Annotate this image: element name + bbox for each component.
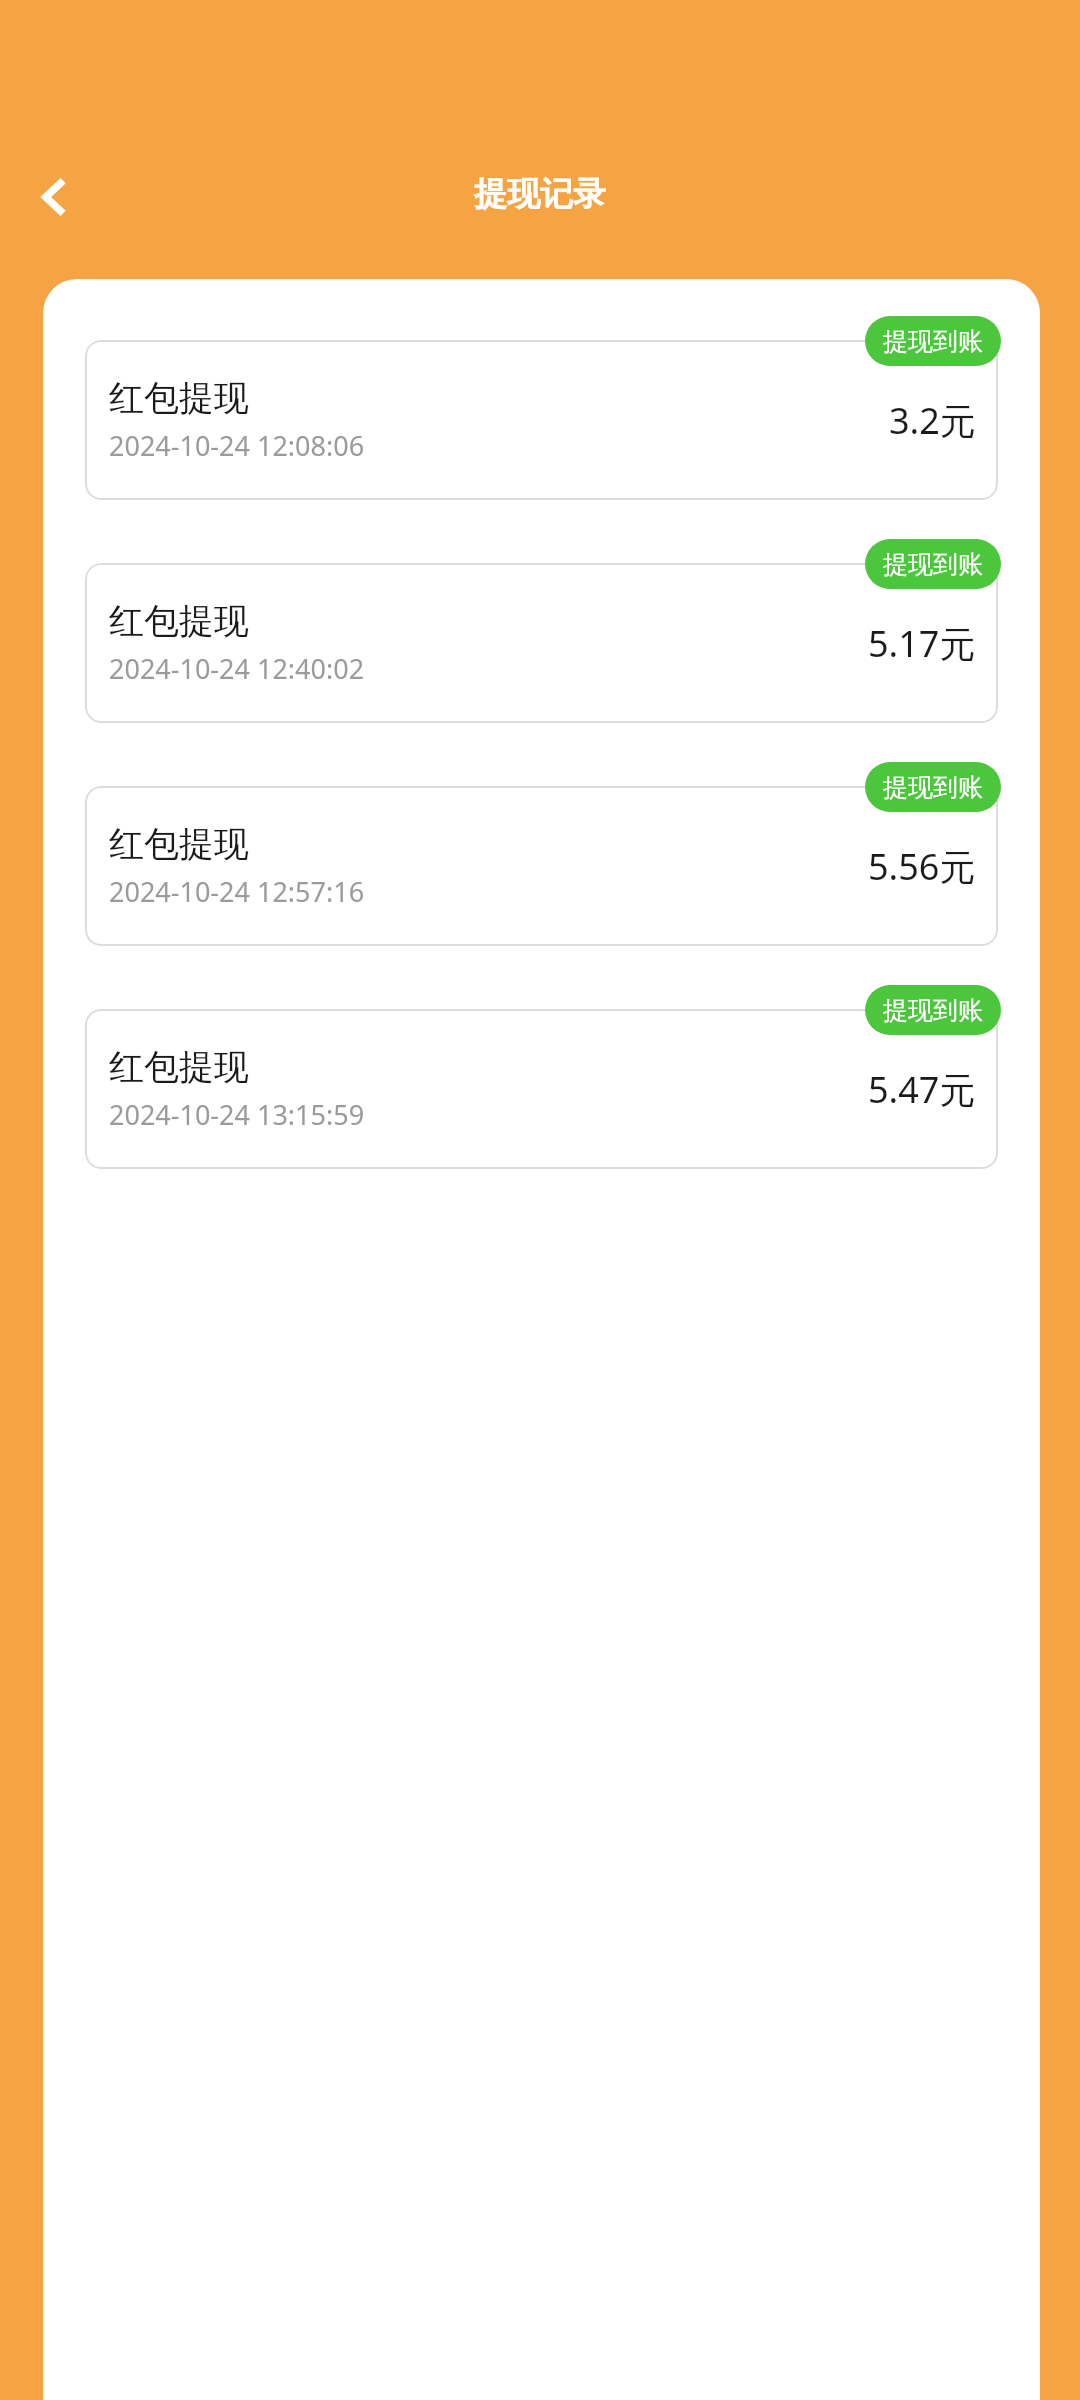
button[interactable]: Back [17, 161, 89, 233]
staticText: 提现到账 [883, 326, 983, 357]
staticText: 提现记录 [474, 173, 606, 215]
staticText: 3.2元 [889, 396, 976, 445]
staticText: 提现到账 [883, 549, 983, 580]
staticText: 提现到账 [883, 995, 983, 1026]
button[interactable]: 红包提现 [43, 786, 1040, 946]
staticText: 红包提现 [109, 376, 249, 420]
staticText: 提现到账 [883, 772, 983, 803]
staticText: 5.47元 [868, 1065, 976, 1114]
staticText: 红包提现 [109, 822, 249, 866]
staticText: 2024-10-24 12:40:02 [109, 650, 365, 687]
staticText: 2024-10-24 12:08:06 [109, 427, 365, 464]
button[interactable]: 红包提现 [43, 340, 1040, 500]
staticText: 5.17元 [868, 619, 976, 668]
staticText: 红包提现 [109, 599, 249, 643]
button[interactable]: 红包提现 [43, 1009, 1040, 1169]
staticText: 红包提现 [109, 1045, 249, 1089]
staticText: 2024-10-24 13:15:59 [109, 1096, 365, 1133]
staticText: 5.56元 [868, 842, 976, 891]
button[interactable]: 红包提现 [43, 563, 1040, 723]
staticText: 2024-10-24 12:57:16 [109, 873, 365, 910]
